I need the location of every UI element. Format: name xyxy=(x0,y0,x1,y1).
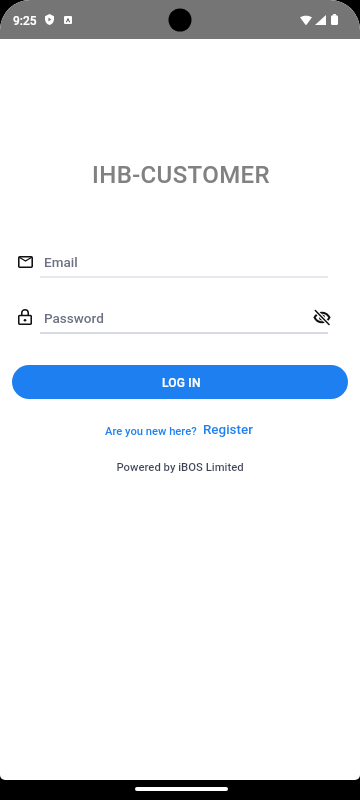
staticText: Email xyxy=(44,254,78,270)
button[interactable]: Show password xyxy=(310,305,334,329)
staticText: LOG IN xyxy=(162,376,201,390)
staticText: IHB-CUSTOMER xyxy=(1,161,360,189)
staticText: Register xyxy=(203,422,253,438)
button[interactable]: LOG IN xyxy=(12,365,348,399)
button[interactable]: Register xyxy=(203,422,253,438)
staticText: Are you new here? xyxy=(105,425,197,438)
staticText: Powered by iBOS Limited xyxy=(0,461,360,474)
staticText: Password xyxy=(44,310,104,326)
staticText: 9:25 xyxy=(13,14,37,28)
